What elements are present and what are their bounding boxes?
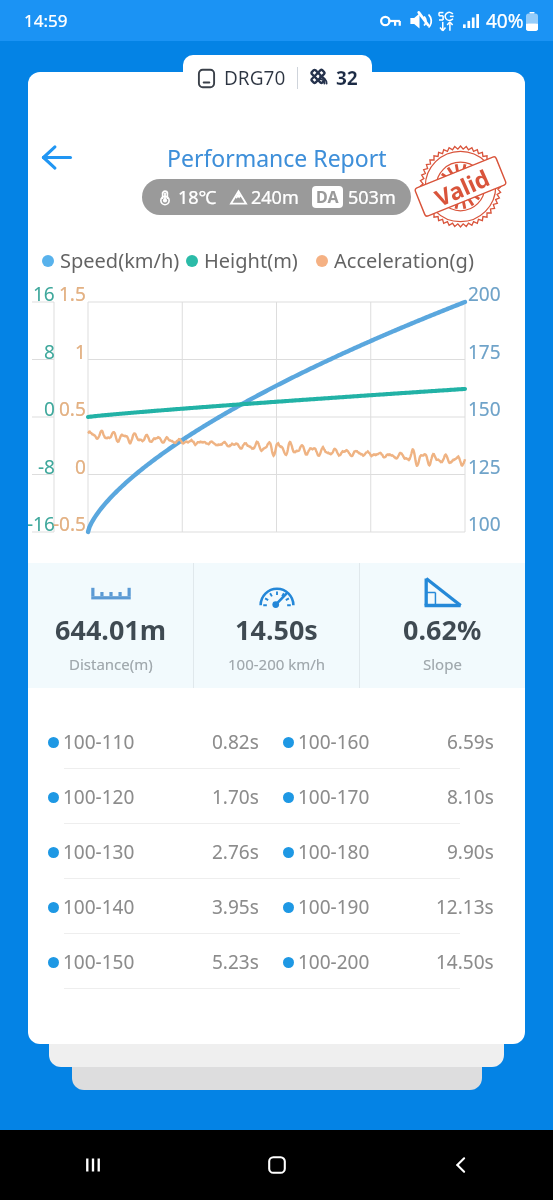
staticText: 150 [468, 396, 501, 422]
staticText: -0.5 [53, 511, 86, 537]
staticText: 100-180 [298, 839, 370, 865]
button[interactable]: Home [185, 1130, 369, 1200]
staticText: Performance Report [167, 142, 387, 173]
staticText: DRG70 [224, 65, 286, 91]
staticText: 14.50s [235, 611, 318, 648]
staticText: 0.5 [59, 396, 86, 422]
button[interactable]: 100-130 [48, 833, 494, 870]
button[interactable]: 100-150 [48, 943, 494, 980]
staticText: 125 [468, 454, 501, 480]
button[interactable]: Recents [0, 1130, 185, 1200]
staticText: 100-130 [63, 839, 135, 865]
button[interactable]: 0.62% [360, 563, 525, 688]
staticText: -8 [38, 454, 55, 480]
button[interactable]: 18℃ [142, 179, 411, 215]
staticText: 100-200 km/h [228, 654, 326, 674]
button[interactable]: 644.01m [28, 563, 193, 688]
staticText: 14:59 [24, 9, 68, 32]
staticText: Slope [423, 654, 462, 674]
staticText: 100-140 [63, 894, 135, 920]
button[interactable]: 100-140 [48, 888, 494, 925]
staticText: 8.10s [447, 784, 494, 810]
staticText: 5.23s [212, 949, 259, 975]
staticText: 503m [348, 185, 396, 210]
staticText: DA [316, 186, 339, 208]
button[interactable]: Back [34, 135, 78, 179]
staticText: 40% [486, 8, 524, 34]
staticText: 100-190 [298, 894, 370, 920]
staticText: 100-200 [298, 949, 370, 975]
staticText: 3.95s [212, 894, 259, 920]
staticText: 644.01m [55, 611, 167, 648]
staticText: 100-150 [63, 949, 135, 975]
staticText: 175 [468, 339, 501, 365]
staticText: 100-170 [298, 784, 370, 810]
staticText: Valid [429, 161, 494, 213]
button[interactable]: 100-120 [48, 778, 494, 815]
staticText: 16 [33, 281, 55, 307]
staticText: 14.50s [436, 949, 494, 975]
staticText: 0.82s [212, 729, 259, 755]
staticText: 2.76s [212, 839, 259, 865]
staticText: Speed(km/h) [60, 247, 180, 274]
staticText: 100-110 [63, 729, 135, 755]
staticText: 1 [75, 339, 86, 365]
button[interactable]: Back [369, 1130, 553, 1200]
staticText: 0 [44, 396, 55, 422]
staticText: 100-120 [63, 784, 135, 810]
button[interactable]: DRG70 [183, 55, 372, 100]
staticText: Acceleration(g) [334, 247, 474, 274]
staticText: 9.90s [447, 839, 494, 865]
button[interactable]: 14.50s [194, 563, 359, 688]
staticText: 0 [75, 454, 86, 480]
staticText: 8 [44, 339, 55, 365]
staticText: Distance(m) [69, 654, 153, 674]
staticText: 18℃ [178, 185, 217, 210]
staticText: 1.70s [212, 784, 259, 810]
staticText: 6.59s [447, 729, 494, 755]
staticText: 1.5 [59, 281, 86, 307]
staticText: 32 [336, 65, 358, 91]
button[interactable]: 100-110 [48, 723, 494, 760]
staticText: 100 [468, 511, 501, 537]
staticText: 200 [468, 281, 501, 307]
staticText: 12.13s [436, 894, 494, 920]
staticText: Height(m) [204, 247, 298, 274]
staticText: -16 [28, 511, 55, 537]
staticText: 0.62% [403, 611, 482, 648]
staticText: 240m [251, 185, 299, 210]
staticText: 100-160 [298, 729, 370, 755]
